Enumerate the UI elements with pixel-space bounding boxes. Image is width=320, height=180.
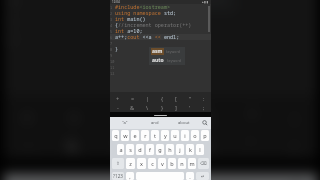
- button[interactable]: s: [126, 144, 134, 155]
- button[interactable]: r: [141, 130, 149, 141]
- staticText: s: [129, 146, 132, 153]
- button[interactable]: ': [183, 103, 197, 112]
- staticText: g: [158, 146, 162, 153]
- staticText: b: [170, 160, 174, 167]
- button[interactable]: w: [121, 130, 129, 141]
- staticText: |: [116, 105, 128, 127]
- button[interactable]: asm: [149, 47, 185, 56]
- button[interactable]: about: [187, 174, 277, 180]
- staticText: 10: [110, 59, 115, 64]
- button[interactable]: c: [148, 158, 156, 169]
- button[interactable]: \: [97, 130, 143, 158]
- staticText: 4: [110, 23, 115, 28]
- button[interactable]: j: [176, 144, 184, 155]
- staticText: d: [138, 146, 142, 153]
- staticText: z: [129, 160, 132, 167]
- button[interactable]: g: [156, 144, 164, 155]
- button[interactable]: |: [140, 94, 155, 103]
- button[interactable]: k: [186, 144, 194, 155]
- button[interactable]: Search: [198, 117, 211, 129]
- button[interactable]: .: [186, 172, 194, 180]
- button[interactable]: auto: [125, 0, 236, 12]
- button[interactable]: +: [110, 94, 125, 103]
- button[interactable]: f: [146, 144, 154, 155]
- button[interactable]: }: [155, 103, 169, 112]
- staticText: int main(): [115, 16, 146, 22]
- staticText: 11: [110, 65, 115, 70]
- button[interactable]: o: [191, 130, 199, 141]
- button[interactable]: p: [201, 130, 209, 141]
- button[interactable]: Home: [4, 158, 317, 174]
- staticText: :: [203, 95, 205, 102]
- button[interactable]: v: [158, 158, 166, 169]
- button[interactable]: e: [131, 130, 139, 141]
- button[interactable]: [: [169, 94, 183, 103]
- staticText: [: [205, 105, 212, 127]
- staticText: c: [151, 160, 154, 167]
- button[interactable]: =: [125, 94, 140, 103]
- button[interactable]: :: [197, 94, 211, 103]
- button[interactable]: &: [125, 103, 140, 112]
- button[interactable]: a: [117, 144, 124, 155]
- staticText: ↵: [201, 174, 205, 179]
- button[interactable]: z: [126, 158, 135, 169]
- staticText: j: [179, 146, 181, 153]
- button[interactable]: ": [183, 94, 197, 103]
- button[interactable]: [: [187, 102, 230, 130]
- button[interactable]: {: [155, 94, 169, 103]
- button[interactable]: h: [166, 144, 174, 155]
- button[interactable]: ]: [187, 130, 230, 158]
- button[interactable]: Symbols: [112, 172, 124, 180]
- button[interactable]: d: [136, 144, 144, 155]
- button[interactable]: {: [143, 102, 187, 130]
- button[interactable]: Search: [277, 174, 317, 180]
- button[interactable]: "a": [110, 117, 140, 129]
- button[interactable]: Enter: [196, 172, 209, 180]
- staticText: ⌫: [200, 161, 207, 166]
- button[interactable]: y: [161, 130, 169, 141]
- button[interactable]: m: [188, 158, 196, 169]
- button[interactable]: Shift: [112, 158, 124, 169]
- button[interactable]: auto: [149, 56, 185, 65]
- staticText: q: [114, 132, 118, 139]
- button[interactable]: q: [112, 130, 119, 141]
- button[interactable]: -: [110, 103, 125, 112]
- staticText: #include<iostream>: [115, 4, 171, 10]
- button[interactable]: ]: [169, 103, 183, 112]
- button[interactable]: and: [97, 174, 187, 180]
- button[interactable]: Backspace: [198, 158, 209, 169]
- button[interactable]: ,: [126, 172, 134, 180]
- button[interactable]: t: [151, 130, 159, 141]
- button[interactable]: b: [168, 158, 176, 169]
- staticText: }: [161, 104, 164, 111]
- button[interactable]: }: [143, 130, 187, 158]
- staticText: }: [115, 46, 119, 52]
- button[interactable]: and: [140, 117, 169, 129]
- button[interactable]: u: [171, 130, 179, 141]
- button[interactable]: x: [137, 158, 146, 169]
- button[interactable]: Home: [110, 112, 211, 117]
- button[interactable]: |: [97, 102, 143, 130]
- staticText: 2: [110, 11, 115, 16]
- button[interactable]: i: [181, 130, 189, 141]
- button[interactable]: about: [169, 117, 198, 129]
- staticText: 3: [110, 17, 115, 22]
- button[interactable]: n: [178, 158, 186, 169]
- staticText: }: [162, 133, 171, 155]
- button[interactable]: ;: [197, 103, 211, 112]
- button[interactable]: \: [140, 103, 155, 112]
- button[interactable]: l: [196, 144, 204, 155]
- button[interactable]: "a": [4, 174, 97, 180]
